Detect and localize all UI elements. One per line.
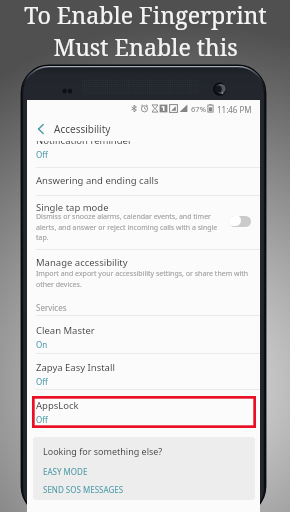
staticText: Off (36, 376, 48, 387)
staticText: 11:46 PM (217, 104, 252, 115)
staticText: Clean Master (36, 324, 95, 337)
button[interactable]: Answering and ending calls (27, 174, 260, 187)
staticText: Manage accessibility (36, 256, 128, 269)
staticText: Answering and ending calls (36, 174, 159, 187)
button[interactable]: Single tap mode toggle (229, 216, 251, 227)
staticText: Zapya Easy Install (36, 361, 115, 374)
button[interactable]: Single tap mode (27, 201, 260, 214)
staticText: Dismiss or snooze alarms, calendar event… (36, 212, 220, 242)
button[interactable]: Clean Master (27, 324, 260, 350)
staticText: Off (36, 414, 48, 425)
button[interactable]: Back (27, 116, 54, 141)
staticText: Single tap mode (36, 201, 109, 214)
button[interactable]: AppsLock (27, 399, 260, 425)
staticText: Notification reminder (36, 134, 132, 147)
button[interactable]: SEND SOS MESSAGES (43, 484, 124, 495)
button[interactable]: Notification reminder (27, 134, 260, 160)
staticText: 67% (191, 104, 206, 114)
staticText: Accessibility (54, 122, 111, 136)
button[interactable]: Manage accessibility (27, 256, 260, 269)
staticText: On (36, 339, 48, 350)
staticText: Services (36, 302, 67, 313)
button[interactable]: Back (27, 116, 260, 141)
staticText: Import and export your accessibility set… (36, 269, 251, 289)
staticText: To Enable Fingerprint (24, 0, 267, 31)
staticText: Looking for something else? (43, 445, 163, 457)
staticText: AppsLock (36, 399, 79, 412)
button[interactable]: EASY MODE (43, 466, 88, 477)
button[interactable]: Zapya Easy Install (27, 361, 260, 387)
staticText: Off (36, 149, 48, 160)
staticText: Must Enable this (53, 31, 238, 63)
